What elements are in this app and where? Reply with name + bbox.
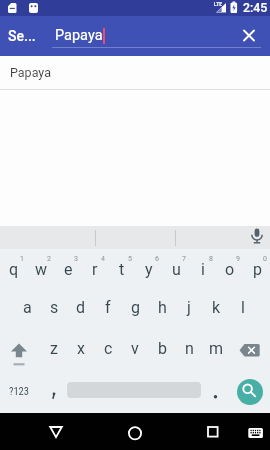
button[interactable]: b: [149, 338, 175, 358]
button[interactable]: [237, 379, 263, 405]
button[interactable]: [231, 332, 268, 369]
staticText: i: [201, 260, 205, 279]
staticText: z: [50, 339, 58, 358]
button[interactable]: f: [95, 297, 121, 317]
staticText: 6: [155, 255, 159, 263]
button[interactable]: n: [176, 338, 202, 358]
button[interactable]: ?123: [4, 381, 33, 400]
staticText: a: [23, 298, 32, 317]
button[interactable]: d: [68, 297, 94, 317]
button[interactable]: u: [163, 259, 189, 279]
staticText: 8: [209, 255, 213, 263]
staticText: 3: [74, 255, 78, 263]
button[interactable]: [2, 332, 39, 369]
button[interactable]: [243, 226, 270, 249]
button[interactable]: m: [203, 338, 229, 358]
button[interactable]: v: [122, 338, 148, 358]
button[interactable]: c: [95, 338, 121, 358]
button[interactable]: k: [203, 297, 229, 317]
staticText: 2:45: [243, 1, 268, 15]
staticText: o: [225, 260, 235, 279]
staticText: x: [77, 339, 85, 358]
staticText: 0: [263, 255, 267, 263]
staticText: l: [241, 298, 245, 317]
button[interactable]: o: [217, 259, 243, 279]
button[interactable]: e: [55, 259, 81, 279]
staticText: ?123: [9, 385, 29, 397]
staticText: 2: [47, 255, 51, 263]
staticText: b: [158, 339, 167, 358]
button[interactable]: r: [82, 259, 108, 279]
staticText: k: [212, 298, 221, 317]
button[interactable]: y: [136, 259, 162, 279]
staticText: Papaya: [55, 27, 103, 44]
staticText: t: [119, 260, 125, 279]
staticText: 5: [128, 255, 132, 263]
staticText: v: [131, 339, 139, 358]
staticText: Se...: [8, 28, 36, 44]
button[interactable]: w: [28, 259, 54, 279]
button[interactable]: z: [41, 338, 67, 358]
button[interactable]: i: [190, 259, 216, 279]
button[interactable]: [36, 417, 76, 447]
button[interactable]: [202, 377, 229, 404]
button[interactable]: s: [41, 297, 67, 317]
button[interactable]: [0, 56, 270, 89]
staticText: m: [209, 339, 224, 358]
staticText: e: [64, 260, 73, 279]
staticText: n: [185, 339, 194, 358]
staticText: Papaya: [10, 65, 51, 80]
button[interactable]: h: [149, 297, 175, 317]
button[interactable]: j: [176, 297, 202, 317]
staticText: c: [104, 339, 113, 358]
staticText: h: [158, 298, 167, 317]
staticText: s: [50, 298, 59, 317]
staticText: 1: [20, 255, 24, 263]
button[interactable]: [235, 21, 263, 49]
button[interactable]: x: [68, 338, 94, 358]
staticText: y: [145, 260, 153, 279]
button[interactable]: [115, 417, 155, 447]
button[interactable]: [240, 417, 270, 447]
button[interactable]: p: [244, 259, 270, 279]
staticText: p: [253, 260, 262, 279]
button[interactable]: a: [14, 297, 40, 317]
staticText: j: [187, 298, 191, 317]
button[interactable]: q: [1, 259, 27, 279]
button[interactable]: [40, 377, 67, 404]
button[interactable]: t: [109, 259, 135, 279]
staticText: w: [35, 260, 48, 279]
button[interactable]: l: [230, 297, 256, 317]
staticText: r: [92, 260, 98, 279]
button[interactable]: [192, 417, 232, 447]
staticText: d: [76, 298, 86, 317]
staticText: 9: [236, 255, 240, 263]
staticText: LTE: [214, 1, 223, 7]
staticText: u: [172, 260, 181, 279]
staticText: g: [131, 298, 140, 317]
staticText: 7: [182, 255, 186, 263]
staticText: 4: [101, 255, 105, 263]
staticText: q: [9, 260, 19, 279]
staticText: f: [105, 298, 111, 317]
button[interactable]: g: [122, 297, 148, 317]
